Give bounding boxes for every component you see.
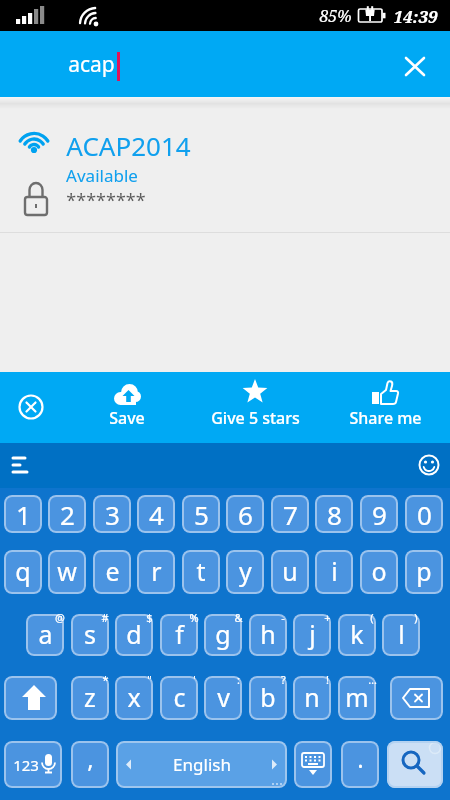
button[interactable]: q [4,550,42,594]
button[interactable]: m [338,676,376,720]
button[interactable]: h [249,614,287,656]
staticText: ( [370,610,374,625]
button[interactable]: 2 [48,495,86,533]
staticText: z [84,680,96,714]
staticText: b [260,680,276,714]
button[interactable]: u [271,550,309,594]
staticText: ' [193,672,196,687]
staticText: 2 [60,497,75,532]
staticText: 8 [327,497,342,532]
button[interactable]: d [115,614,153,656]
staticText: ! [326,672,329,687]
staticText: ACAP2014 [66,128,191,162]
button[interactable]: 8 [315,495,353,533]
button[interactable]: g [204,614,242,656]
button[interactable]: Save [87,376,167,438]
staticText: o [371,554,387,588]
button[interactable]: v [204,676,242,720]
button[interactable] [390,676,443,720]
button[interactable]: t [182,550,220,594]
staticText: + [324,610,331,625]
button[interactable]: o [360,550,398,594]
staticText: 4 [149,497,164,532]
staticText: 14:39 [393,5,438,28]
staticText: l [398,617,405,651]
staticText: q [15,554,31,588]
button[interactable]: j [293,614,331,656]
staticText: acap [68,50,115,79]
staticText: h [260,617,276,651]
button[interactable]: f [160,614,198,656]
button[interactable]: b [249,676,287,720]
button[interactable] [396,48,434,86]
button[interactable]: Give 5 stars [195,376,315,438]
button[interactable]: Share me [345,376,425,438]
button[interactable]: 3 [93,495,131,533]
staticText: : [237,672,240,687]
staticText: Available [66,164,138,186]
staticText: 6 [238,497,253,532]
staticText: g [215,617,231,651]
staticText: c [173,680,186,714]
button[interactable]: w [48,550,86,594]
button[interactable]: a [26,614,64,656]
button[interactable] [4,741,62,788]
button[interactable]: e [93,550,131,594]
staticText: k [350,617,364,651]
staticText: # [101,610,109,625]
button[interactable]: k [338,614,376,656]
button[interactable]: . [341,741,379,788]
button[interactable] [294,741,332,788]
staticText: Save [109,407,145,429]
staticText: 9 [372,497,387,532]
staticText: 85% [319,5,352,27]
staticText: 123 [13,755,39,775]
staticText: m [345,680,369,714]
button[interactable]: i [315,550,353,594]
staticText: x [127,680,141,714]
staticText: t [196,554,206,588]
staticText: English [173,753,231,776]
staticText: ******** [66,188,146,213]
button[interactable]: p [405,550,443,594]
staticText: r [151,554,162,588]
button[interactable] [13,389,49,425]
staticText: v [217,680,230,714]
staticText: - [281,610,285,625]
button[interactable] [116,741,287,788]
button[interactable]: 5 [182,495,220,533]
button[interactable]: , [71,741,109,788]
button[interactable] [4,676,57,720]
button[interactable]: y [226,550,264,594]
button[interactable]: 6 [226,495,264,533]
button[interactable]: 7 [271,495,309,533]
button[interactable]: n [293,676,331,720]
button[interactable]: s [71,614,109,656]
button[interactable]: 1 [4,495,42,533]
staticText: f [175,617,184,651]
staticText: ? [281,672,286,687]
staticText: 1 [16,497,31,532]
staticText: % [189,610,199,625]
button[interactable]: x [115,676,153,720]
staticText: & [234,610,243,625]
staticText: e [105,554,120,588]
staticText: Share me [349,407,422,429]
button[interactable]: 4 [137,495,175,533]
button[interactable]: z [71,676,109,720]
button[interactable]: l [382,614,420,656]
button[interactable]: 9 [360,495,398,533]
staticText: Give 5 stars [211,407,300,429]
button[interactable]: r [137,550,175,594]
staticText: , [87,742,94,775]
button[interactable]: 0 [405,495,443,533]
staticText: … [368,672,377,687]
button[interactable] [387,741,443,788]
button[interactable]: ACAP2014 [0,109,450,232]
button[interactable]: c [160,676,198,720]
staticText: ) [414,610,418,625]
staticText: u [282,554,298,588]
staticText: 7 [283,497,298,532]
staticText: s [84,617,96,651]
staticText: 5 [194,497,209,532]
